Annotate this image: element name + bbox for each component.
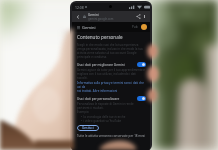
staticText: Gemini [88,13,99,17]
button[interactable]: More options [142,14,147,19]
staticText: Informativa sulla privacy e termini sono… [77,81,146,89]
staticText: gemini.google.com [88,17,114,21]
staticText: Pub [132,25,138,29]
staticText: • i video guardati su YouTube [81,119,122,123]
button[interactable]: Usa i dati per personalizzare [77,96,146,101]
staticText: Gemini agisce da tutor per il tuo appren… [77,68,146,80]
staticText: noi trattati. Altre informazioni [77,89,118,93]
staticText: Scegli in che modo vuoi che la tua esper… [77,43,146,59]
button[interactable]: Usa i dati per migliorare Gemini [77,62,146,67]
staticText: Tutte le attivita verranno conservate pe… [77,134,146,138]
staticText: Gestisci [82,126,94,130]
button[interactable]: Gestisci [77,125,99,131]
staticText: • la cronologia delle tue ricerche [81,115,126,119]
button[interactable]: Menu [75,24,81,30]
button[interactable]: Account [141,24,147,30]
staticText: Personalizza le risposte di Gemini e ren… [77,102,146,114]
button[interactable]: Back [75,14,81,20]
button[interactable]: Share [135,13,142,20]
staticText: Gemini [82,25,96,30]
staticText: Usa i dati per personalizzare [77,97,135,101]
staticText: Usa i dati per migliorare Gemini [77,63,135,67]
staticText: 12:08 [75,5,84,10]
staticText: Contenuto personale [77,34,123,40]
